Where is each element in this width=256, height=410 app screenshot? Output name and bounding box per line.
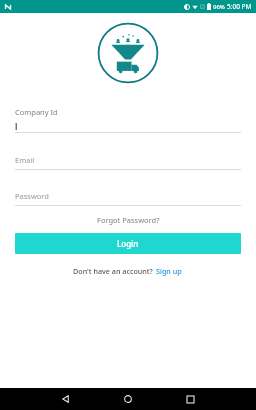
button[interactable]: Home	[108, 388, 148, 410]
staticText: Email	[15, 155, 35, 165]
button[interactable]: Back	[46, 388, 86, 410]
staticText: 96%	[213, 3, 225, 11]
button[interactable]: Company Id	[0, 107, 256, 133]
staticText: Forgot Password?	[97, 215, 160, 225]
button[interactable]: Recent apps	[170, 388, 210, 410]
button[interactable]: Forgot Password?	[91, 213, 166, 227]
staticText: Login	[117, 238, 139, 249]
staticText: Don't have an account?	[73, 266, 155, 276]
button[interactable]: Sign up	[155, 264, 183, 278]
staticText: 5:00 PM	[227, 2, 252, 11]
staticText: Sign up	[156, 266, 182, 276]
staticText: Company Id	[15, 107, 58, 117]
button[interactable]: Email	[0, 155, 256, 170]
staticText: Password	[15, 191, 49, 201]
button[interactable]: Password	[0, 191, 256, 206]
button[interactable]: Login	[15, 233, 241, 254]
